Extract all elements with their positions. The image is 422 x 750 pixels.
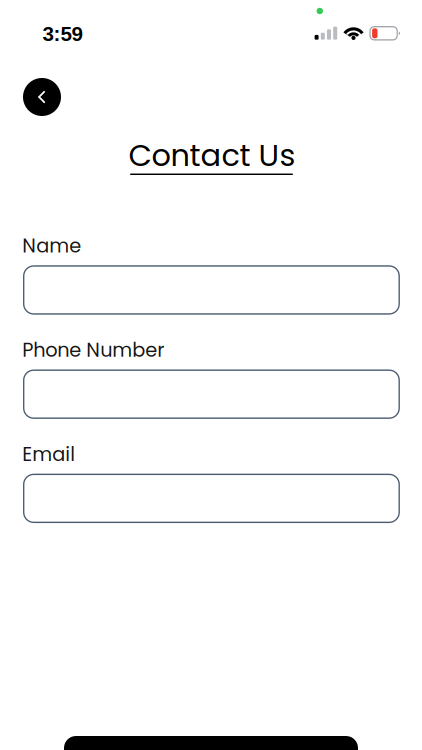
staticText: Email — [22, 441, 75, 468]
button[interactable]: Back — [23, 78, 61, 116]
staticText: Name — [22, 232, 81, 259]
staticText: Contact Us — [128, 134, 295, 177]
button[interactable]: Submit — [64, 736, 358, 750]
button[interactable]: Name — [24, 266, 399, 314]
staticText: 3:59 — [42, 22, 82, 45]
button[interactable]: Email — [24, 474, 399, 522]
button[interactable]: Phone Number — [24, 370, 399, 418]
staticText: Phone Number — [22, 336, 164, 363]
